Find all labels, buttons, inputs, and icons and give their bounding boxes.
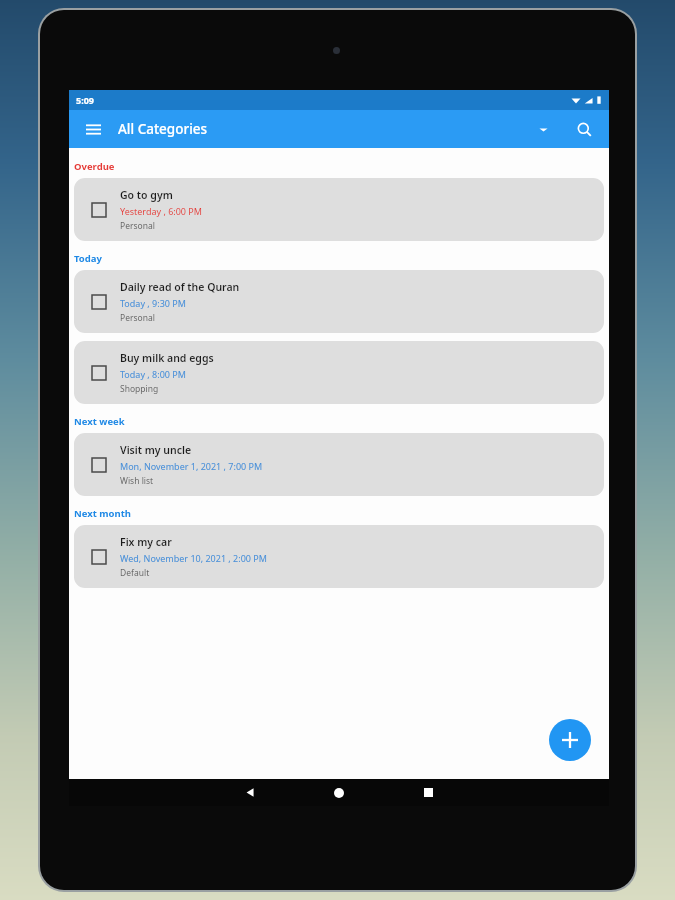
button[interactable]: Home [322, 779, 356, 806]
button[interactable]: Mark complete [86, 197, 112, 223]
button[interactable]: Recent apps [411, 779, 445, 806]
button[interactable]: Add task [549, 719, 591, 761]
staticText: Today [74, 252, 102, 265]
staticText: Wed, November 10, 2021 , 2:00 PM [120, 552, 267, 564]
staticText: Default [120, 567, 150, 579]
staticText: Wish list [120, 475, 154, 487]
staticText: Next week [74, 415, 125, 428]
staticText: Personal [120, 312, 155, 324]
button[interactable]: Mark complete [74, 433, 604, 496]
staticText: Overdue [74, 160, 115, 173]
staticText: Go to gym [120, 188, 173, 202]
button[interactable]: Mark complete [86, 360, 112, 386]
button[interactable]: Mark complete [74, 525, 604, 588]
staticText: Fix my car [120, 535, 172, 549]
button[interactable]: Mark complete [86, 289, 112, 315]
button[interactable]: Mark complete [74, 270, 604, 333]
staticText: Today , 8:00 PM [120, 368, 186, 380]
staticText: Today , 9:30 PM [120, 297, 186, 309]
button[interactable]: Mark complete [86, 452, 112, 478]
staticText: Yesterday , 6:00 PM [120, 205, 202, 217]
button[interactable]: Open navigation menu [79, 115, 107, 143]
button[interactable]: Back [233, 779, 267, 806]
staticText: All Categories [118, 120, 208, 138]
staticText: Mon, November 1, 2021 , 7:00 PM [120, 460, 263, 472]
button[interactable]: Search [569, 114, 599, 144]
staticText: Next month [74, 507, 131, 520]
staticText: Buy milk and eggs [120, 351, 214, 365]
staticText: 5:09 [76, 94, 94, 106]
staticText: Shopping [120, 383, 159, 395]
staticText: Visit my uncle [120, 443, 192, 457]
button[interactable]: Mark complete [74, 178, 604, 241]
staticText: Personal [120, 220, 155, 232]
button[interactable]: Mark complete [74, 341, 604, 404]
button[interactable]: Mark complete [86, 544, 112, 570]
staticText: Daily read of the Quran [120, 280, 240, 294]
button[interactable]: Sort options [528, 114, 558, 144]
